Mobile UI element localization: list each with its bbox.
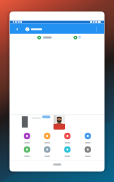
button[interactable]: Message <box>33 34 63 41</box>
button[interactable]: Share to More <box>79 145 97 158</box>
button[interactable]: Share to Chat <box>58 145 76 158</box>
button[interactable]: More options <box>92 24 103 33</box>
button[interactable]: Share to Contacts <box>38 145 56 158</box>
button[interactable]: Message <box>69 34 99 41</box>
button[interactable]: Share to Drive <box>79 131 97 144</box>
button[interactable]: Share to Photos <box>18 131 36 144</box>
button[interactable]: Share to Files <box>38 131 56 144</box>
button[interactable]: Cancel <box>10 161 105 171</box>
button[interactable]: Conversation <box>23 24 92 33</box>
button[interactable]: Share to Messages <box>18 145 36 158</box>
button[interactable]: Share to Mail <box>58 131 76 144</box>
button[interactable]: Back <box>13 24 22 33</box>
